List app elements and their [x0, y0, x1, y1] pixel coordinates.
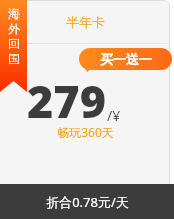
- button[interactable]: 折合0.78元/天: [0, 184, 174, 219]
- staticText: 买一送一: [100, 51, 152, 67]
- staticText: 半年卡: [66, 14, 105, 30]
- staticText: /¥: [107, 106, 121, 125]
- staticText: 外: [8, 21, 20, 36]
- staticText: 回: [8, 36, 20, 51]
- button[interactable]: 买一送一: [79, 48, 172, 70]
- staticText: 畅玩360天: [57, 124, 114, 140]
- button[interactable]: 半年卡: [0, 0, 170, 219]
- staticText: 279: [27, 70, 107, 131]
- staticText: 国: [8, 51, 20, 66]
- staticText: 折合0.78元/天: [46, 193, 129, 211]
- staticText: 海: [8, 6, 20, 21]
- other: 海外回国标签: [0, 0, 27, 92]
